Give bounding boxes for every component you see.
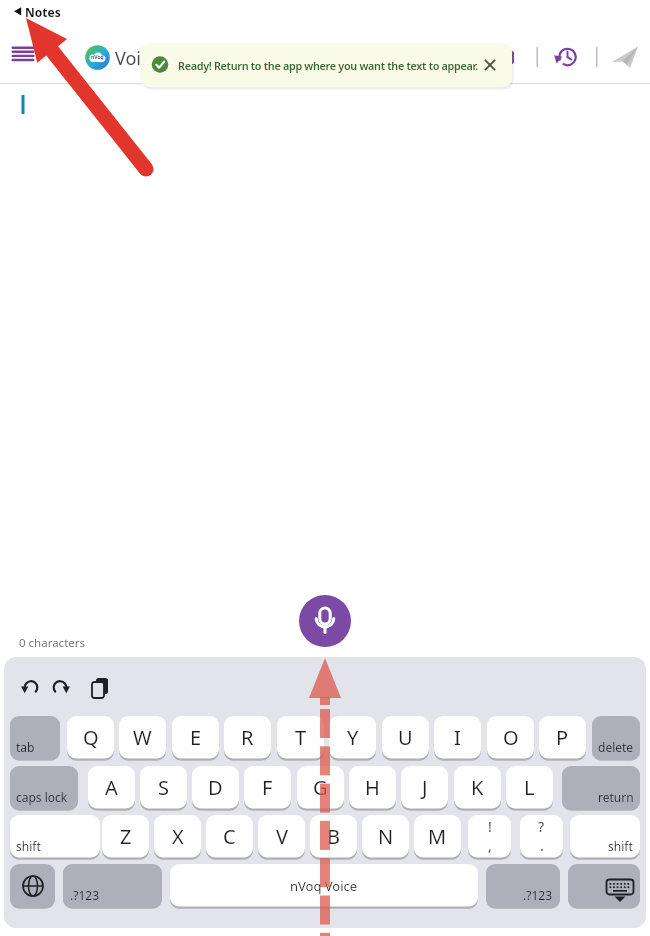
button[interactable] [10, 864, 55, 907]
button[interactable]: F [244, 766, 291, 809]
button[interactable]: G [297, 766, 344, 809]
button[interactable]: A [88, 766, 135, 809]
button[interactable]: Q [67, 716, 114, 759]
staticText: delete [598, 739, 634, 755]
staticText: U [398, 724, 413, 751]
button[interactable] [89, 676, 113, 700]
button[interactable] [20, 676, 42, 698]
button[interactable]: L [506, 766, 553, 809]
button[interactable]: P [539, 716, 586, 759]
button[interactable]: E [172, 716, 219, 759]
staticText: X [172, 823, 184, 850]
staticText: .?123 [70, 887, 100, 903]
staticText: C [223, 823, 236, 850]
button[interactable]: shift [570, 815, 640, 858]
button[interactable]: shift [10, 815, 100, 858]
staticText: shift [608, 838, 633, 854]
staticText: nVoq [91, 54, 104, 61]
staticText: Y [347, 724, 359, 751]
staticText: shift [16, 838, 41, 854]
button[interactable] [568, 864, 640, 907]
button[interactable]: D [192, 766, 239, 809]
staticText: nVoq Voice [290, 877, 358, 895]
staticText: 0 characters [19, 635, 86, 651]
staticText: . [540, 836, 544, 855]
button[interactable]: W [119, 716, 166, 759]
staticText: V [276, 823, 288, 850]
button[interactable]: J [401, 766, 448, 809]
staticText: Ready! Return to the app where you want … [178, 58, 478, 73]
button[interactable]: H [349, 766, 396, 809]
button[interactable]: ? [520, 815, 563, 858]
button[interactable]: caps lock [10, 766, 78, 809]
button[interactable]: B [310, 815, 357, 858]
button[interactable]: O [487, 716, 534, 759]
staticText: N [378, 823, 394, 850]
button[interactable]: X [154, 815, 201, 858]
staticText: Notes [25, 4, 61, 20]
staticText: Voice Keyboard [115, 46, 245, 71]
staticText: O [503, 724, 519, 751]
staticText: return [598, 789, 634, 805]
staticText: ! [488, 817, 492, 836]
staticText: D [208, 774, 223, 801]
button[interactable]: return [562, 766, 640, 809]
staticText: I [454, 724, 461, 751]
button[interactable] [299, 595, 351, 647]
staticText: F [262, 774, 273, 801]
button[interactable]: C [206, 815, 253, 858]
staticText: A [105, 774, 118, 801]
staticText: Q [83, 724, 99, 751]
button[interactable]: U [382, 716, 429, 759]
button[interactable] [49, 676, 71, 698]
button[interactable]: I [434, 716, 481, 759]
button[interactable]: delete [592, 716, 640, 759]
staticText: ? [538, 817, 545, 836]
button[interactable]: R [224, 716, 271, 759]
button[interactable]: .?123 [486, 864, 560, 907]
staticText: L [524, 774, 535, 801]
button[interactable]: N [362, 815, 409, 858]
staticText: Z [120, 823, 132, 850]
staticText: R [241, 724, 254, 751]
button[interactable]: Y [329, 716, 376, 759]
staticText: P [556, 724, 569, 751]
staticText: S [158, 774, 169, 801]
staticText: tab [16, 739, 35, 755]
staticText: B [327, 823, 340, 850]
staticText: W [133, 724, 152, 751]
button[interactable] [478, 53, 502, 77]
button[interactable]: ! [468, 815, 511, 858]
button[interactable]: M [414, 815, 461, 858]
button[interactable]: .?123 [63, 864, 162, 907]
staticText: .?123 [523, 887, 553, 903]
staticText: K [471, 774, 484, 801]
button[interactable]: nVoq Voice [170, 864, 478, 907]
button[interactable] [6, 42, 42, 70]
staticText: G [313, 774, 328, 801]
staticText: T [295, 724, 307, 751]
button[interactable]: T [277, 716, 324, 759]
staticText: caps lock [16, 789, 68, 805]
staticText: M [428, 823, 447, 850]
button[interactable]: Notes [10, 2, 54, 26]
staticText: , [488, 836, 492, 855]
button[interactable]: K [454, 766, 501, 809]
button[interactable]: Z [102, 815, 149, 858]
button[interactable]: S [140, 766, 187, 809]
staticText: E [190, 724, 202, 751]
button[interactable]: tab [10, 716, 60, 759]
staticText: H [365, 774, 380, 801]
button[interactable]: V [258, 815, 305, 858]
staticText: J [422, 774, 428, 801]
